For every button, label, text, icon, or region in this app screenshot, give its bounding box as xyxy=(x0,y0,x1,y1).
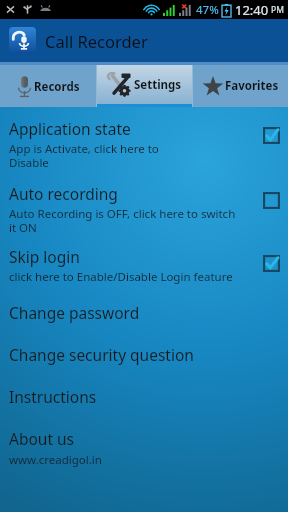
staticText: Favorites xyxy=(225,78,279,94)
button[interactable]: Skip login xyxy=(0,235,288,285)
staticText: Change security question xyxy=(9,344,194,365)
staticText: Instructions xyxy=(9,386,97,407)
staticText: About us xyxy=(9,428,75,449)
staticText: Settings xyxy=(134,77,182,93)
button[interactable]: Instructions xyxy=(0,365,288,407)
button[interactable]: Enabled xyxy=(262,126,281,145)
button[interactable]: Application state xyxy=(0,107,288,170)
staticText: Call Recorder xyxy=(45,30,148,52)
staticText: 47% xyxy=(196,2,219,18)
staticText: Application state xyxy=(9,118,131,139)
button[interactable]: Settings xyxy=(97,65,192,107)
staticText: App is Activate, click here to Disable xyxy=(9,141,159,170)
button[interactable]: About us xyxy=(0,407,288,468)
staticText: Auto Recording is OFF, click here to swi… xyxy=(9,206,236,235)
button[interactable]: Records xyxy=(0,65,96,107)
staticText: Records xyxy=(34,79,80,95)
staticText: Auto recording xyxy=(9,183,118,204)
button[interactable]: Enabled xyxy=(262,254,281,273)
button[interactable]: Disabled xyxy=(262,191,281,210)
staticText: PM xyxy=(271,4,284,16)
button[interactable]: Change security question xyxy=(0,323,288,365)
staticText: click here to Enable/Disable Login featu… xyxy=(9,269,233,285)
button[interactable]: Favorites xyxy=(193,65,288,107)
button[interactable]: Change password xyxy=(0,285,288,323)
staticText: www.creadigol.in xyxy=(9,452,102,468)
button[interactable]: Auto recording xyxy=(0,170,288,235)
staticText: Change password xyxy=(9,302,140,323)
staticText: 12:40 xyxy=(235,1,269,19)
staticText: Skip login xyxy=(9,246,80,267)
